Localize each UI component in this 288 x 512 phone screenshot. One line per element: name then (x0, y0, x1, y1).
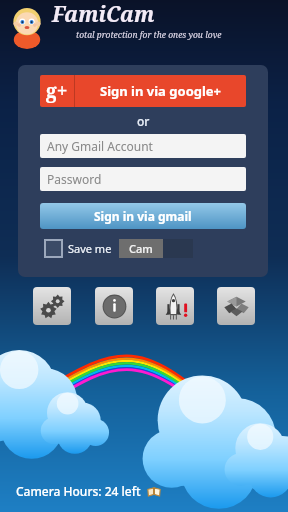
button[interactable]: Information (95, 287, 133, 325)
staticText: Sign in via gmail (94, 208, 192, 224)
button[interactable]: Settings (33, 287, 71, 325)
button[interactable]: Save me (68, 241, 112, 256)
staticText: FamiCam (52, 0, 155, 29)
staticText: g+ (46, 78, 68, 104)
button[interactable]: g+ (40, 75, 246, 107)
button[interactable]: Launch (156, 287, 194, 325)
staticText: Sign in via google+ (100, 82, 222, 100)
button[interactable]: Sign in via gmail (40, 203, 246, 229)
button[interactable]: Mode selector: Cam (119, 239, 193, 258)
staticText: or (137, 113, 150, 129)
button[interactable]: Dropbox (217, 287, 255, 325)
staticText: Any Gmail Account (47, 138, 153, 154)
staticText: Password (47, 171, 102, 187)
button[interactable]: Any Gmail Account (40, 134, 246, 158)
button[interactable]: Password (40, 167, 246, 191)
staticText: Camera Hours: 24 left (16, 483, 141, 499)
staticText: total protection for the ones you love (76, 29, 222, 41)
staticText: Cam (129, 241, 153, 256)
staticText: Save me (68, 241, 112, 256)
